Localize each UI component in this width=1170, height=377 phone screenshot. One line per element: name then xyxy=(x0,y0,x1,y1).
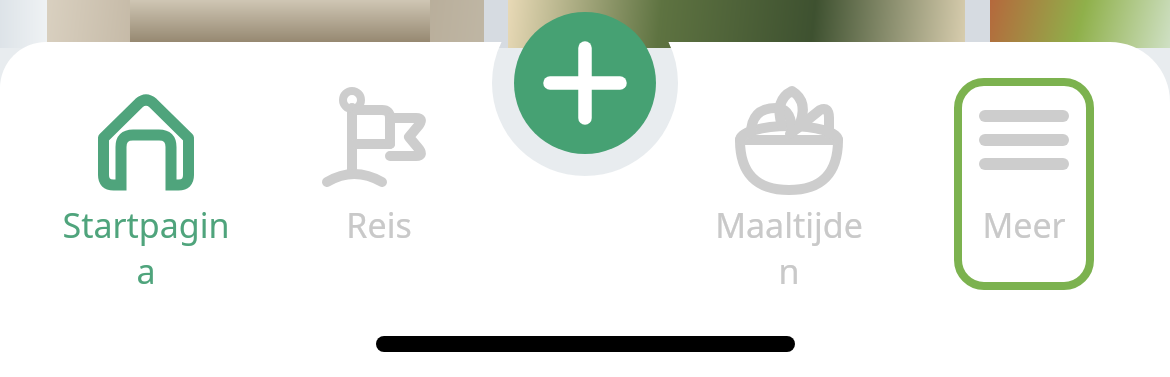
button[interactable]: Maaltijden xyxy=(705,82,873,288)
staticText: Startpagina xyxy=(62,202,230,288)
staticText: Reis xyxy=(346,202,412,248)
button[interactable]: Toevoegen xyxy=(514,12,656,154)
button[interactable]: Startpagina xyxy=(62,82,230,288)
staticText: Maaltijden xyxy=(705,202,873,288)
button[interactable]: Reis xyxy=(295,82,463,288)
button[interactable]: Meer xyxy=(940,82,1108,288)
staticText: Meer xyxy=(982,202,1066,248)
